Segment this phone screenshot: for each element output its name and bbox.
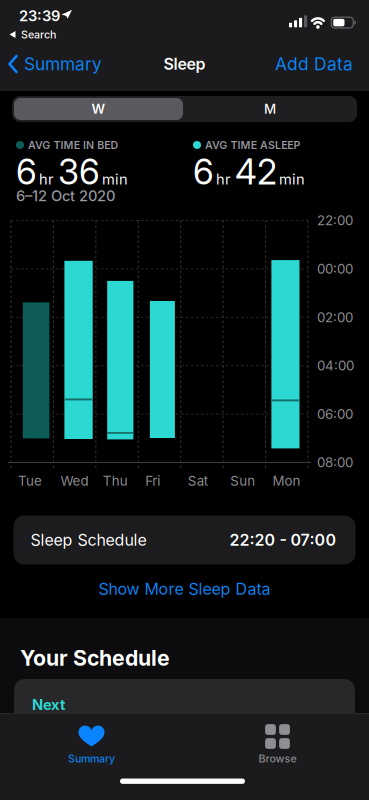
staticText: Summary (68, 752, 115, 765)
staticText: Your Schedule (20, 645, 170, 671)
staticText: 36 (58, 152, 100, 192)
staticText: hr (39, 171, 54, 188)
staticText: Sat (188, 473, 208, 489)
staticText: Sleep Schedule (30, 531, 146, 549)
staticText: hr (216, 171, 231, 188)
button[interactable]: Show More Sleep Data (0, 577, 369, 601)
staticText: min (279, 171, 305, 188)
staticText: 04:00 (317, 358, 354, 373)
staticText: 00:00 (317, 261, 353, 277)
staticText: Tue (18, 473, 42, 489)
staticText: 02:00 (317, 309, 353, 325)
button[interactable]: Next (14, 679, 355, 739)
staticText: 22:20 - 07:00 (229, 531, 336, 549)
staticText: 42 (235, 152, 277, 192)
staticText: Add Data (275, 54, 353, 74)
staticText: Search (21, 28, 56, 41)
staticText: 23:39 (19, 7, 60, 25)
staticText: W (91, 101, 105, 117)
staticText: Wed (60, 473, 88, 489)
staticText: Summary (24, 54, 102, 74)
button[interactable]: Sleep Schedule (13, 515, 355, 564)
staticText: Next (32, 696, 65, 713)
staticText: AVG TIME IN BED (28, 139, 118, 151)
staticText: Fri (145, 473, 160, 489)
button[interactable]: W (14, 98, 183, 120)
staticText: 06:00 (317, 406, 353, 422)
staticText: min (102, 171, 128, 188)
button[interactable]: Browse (231, 719, 324, 765)
staticText: Mon (273, 473, 301, 489)
staticText: Sleep (163, 55, 205, 73)
staticText: 6 (193, 152, 214, 192)
staticText: 6–12 Oct 2020 (16, 187, 115, 205)
button[interactable]: Search (8, 26, 56, 43)
staticText: 08:00 (317, 455, 353, 470)
button[interactable]: Summary (45, 719, 138, 765)
staticText: Browse (258, 752, 296, 765)
staticText: AVG TIME ASLEEP (205, 139, 300, 151)
staticText: Thu (103, 473, 128, 489)
staticText: M (264, 101, 276, 117)
button[interactable]: Add Data (275, 52, 353, 76)
staticText: 6 (16, 152, 37, 192)
button[interactable]: M (185, 96, 355, 122)
staticText: Show More Sleep Data (98, 580, 270, 598)
staticText: Sun (230, 473, 255, 489)
staticText: 22:00 (317, 213, 353, 228)
button[interactable]: Summary (8, 52, 102, 76)
